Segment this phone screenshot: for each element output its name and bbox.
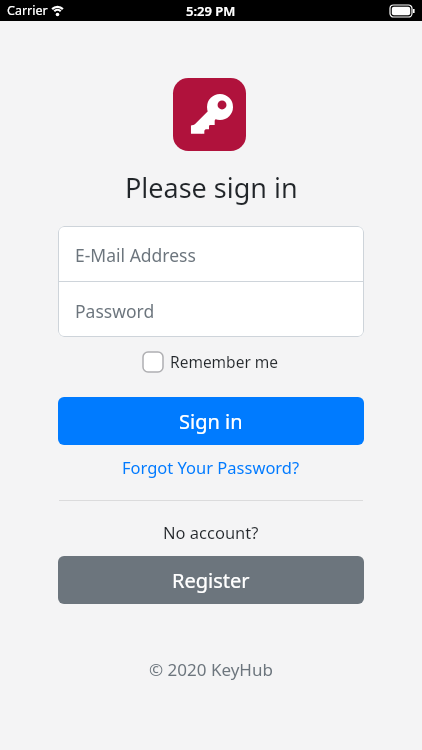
button[interactable]: E-Mail Address bbox=[58, 226, 364, 281]
staticText: Password bbox=[75, 299, 155, 323]
staticText: Sign in bbox=[179, 408, 243, 435]
staticText: E-Mail Address bbox=[75, 243, 196, 267]
staticText: Register bbox=[172, 567, 250, 594]
button[interactable]: Password bbox=[58, 282, 364, 337]
button[interactable]: Sign in bbox=[58, 397, 364, 445]
staticText: 5:29 PM bbox=[186, 2, 236, 20]
staticText: Carrier bbox=[7, 2, 48, 19]
button[interactable]: Forgot Your Password? bbox=[122, 456, 300, 478]
button[interactable]: Register bbox=[58, 556, 364, 604]
button[interactable]: Remember me bbox=[143, 351, 279, 372]
staticText: Remember me bbox=[170, 351, 279, 372]
staticText: Please sign in bbox=[125, 169, 298, 205]
staticText: No account? bbox=[163, 521, 259, 543]
staticText: © 2020 KeyHub bbox=[149, 658, 273, 681]
